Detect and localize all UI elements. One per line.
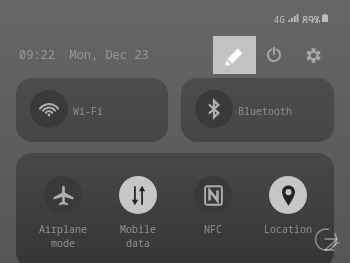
staticText: Wi-Fi <box>73 104 103 118</box>
staticText: Bluetooth <box>238 104 292 118</box>
staticText: 89% <box>302 13 320 23</box>
button[interactable]: Mobile data <box>100 176 175 250</box>
staticText: Location <box>264 222 312 236</box>
button[interactable]: NFC <box>175 176 250 236</box>
button[interactable]: Bluetooth <box>181 78 334 142</box>
staticText: 09:22 Mon, Dec 23 <box>19 46 149 62</box>
button[interactable]: Airplane mode <box>25 176 100 250</box>
staticText: Mobile data <box>120 222 156 250</box>
staticText: 4G <box>274 13 285 23</box>
staticText: NFC <box>204 222 222 236</box>
button[interactable]: Settings <box>295 37 331 73</box>
button[interactable]: Power <box>256 37 292 73</box>
staticText: Airplane mode <box>39 222 87 250</box>
button[interactable]: Edit quick settings <box>213 36 256 74</box>
button[interactable]: Wi-Fi <box>16 78 168 142</box>
button[interactable]: Location <box>250 176 325 236</box>
